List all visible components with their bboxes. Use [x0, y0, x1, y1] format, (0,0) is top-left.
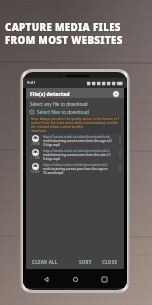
button[interactable]: 11 MB	[26, 148, 124, 162]
button[interactable]: Home	[69, 273, 81, 285]
staticText: FROM MOST WEBSITES	[5, 34, 123, 47]
staticText: Note: Always preselect the quality optio…	[31, 117, 119, 133]
staticText: 11 MB	[31, 156, 40, 160]
button[interactable]: CLOSE	[101, 258, 119, 266]
staticText: 7.6 MB	[30, 170, 40, 174]
button[interactable]: Recents	[98, 273, 110, 285]
staticText: Select files to download	[37, 109, 89, 115]
staticText: CAPTURE MEDIA FILES	[5, 21, 121, 34]
staticText: https://cdata.mobi.cv/video/preview/mobi…	[43, 163, 108, 167]
button[interactable]: More options	[117, 163, 122, 173]
button[interactable]: SORT	[78, 258, 93, 266]
button[interactable]: 28 MB	[26, 134, 124, 148]
staticText: CLEAR ALL	[32, 259, 58, 265]
staticText: mobi-stunning-sunset-pan-from-the-age-m …	[43, 167, 108, 175]
staticText: 9:41	[27, 80, 36, 86]
button[interactable]: Settings	[111, 89, 120, 98]
button[interactable]: Back	[40, 273, 52, 285]
staticText: SORT	[79, 259, 92, 265]
staticText: CLOSE	[102, 259, 118, 265]
staticText: mobil-stunning-sunset-seen-from-the-age-…	[43, 139, 113, 147]
staticText: File(s) detected	[30, 90, 70, 97]
button[interactable]: 7.6 MB	[26, 162, 124, 176]
button[interactable]: CLEAR ALL	[31, 258, 59, 266]
staticText: 28 MB	[31, 142, 40, 146]
button[interactable]: More options	[117, 135, 122, 145]
staticText: https://assets.mobi.cv/video/preview/mob…	[43, 149, 110, 153]
staticText: https://assets.mobi.cv/video/download/mo…	[43, 135, 112, 139]
staticText: Select any file to download	[30, 101, 88, 107]
button[interactable]: More options	[117, 149, 122, 159]
staticText: mobil-stunning-sunset-seen-from-the-size…	[43, 153, 111, 161]
button[interactable]: Select files to download	[30, 109, 89, 115]
